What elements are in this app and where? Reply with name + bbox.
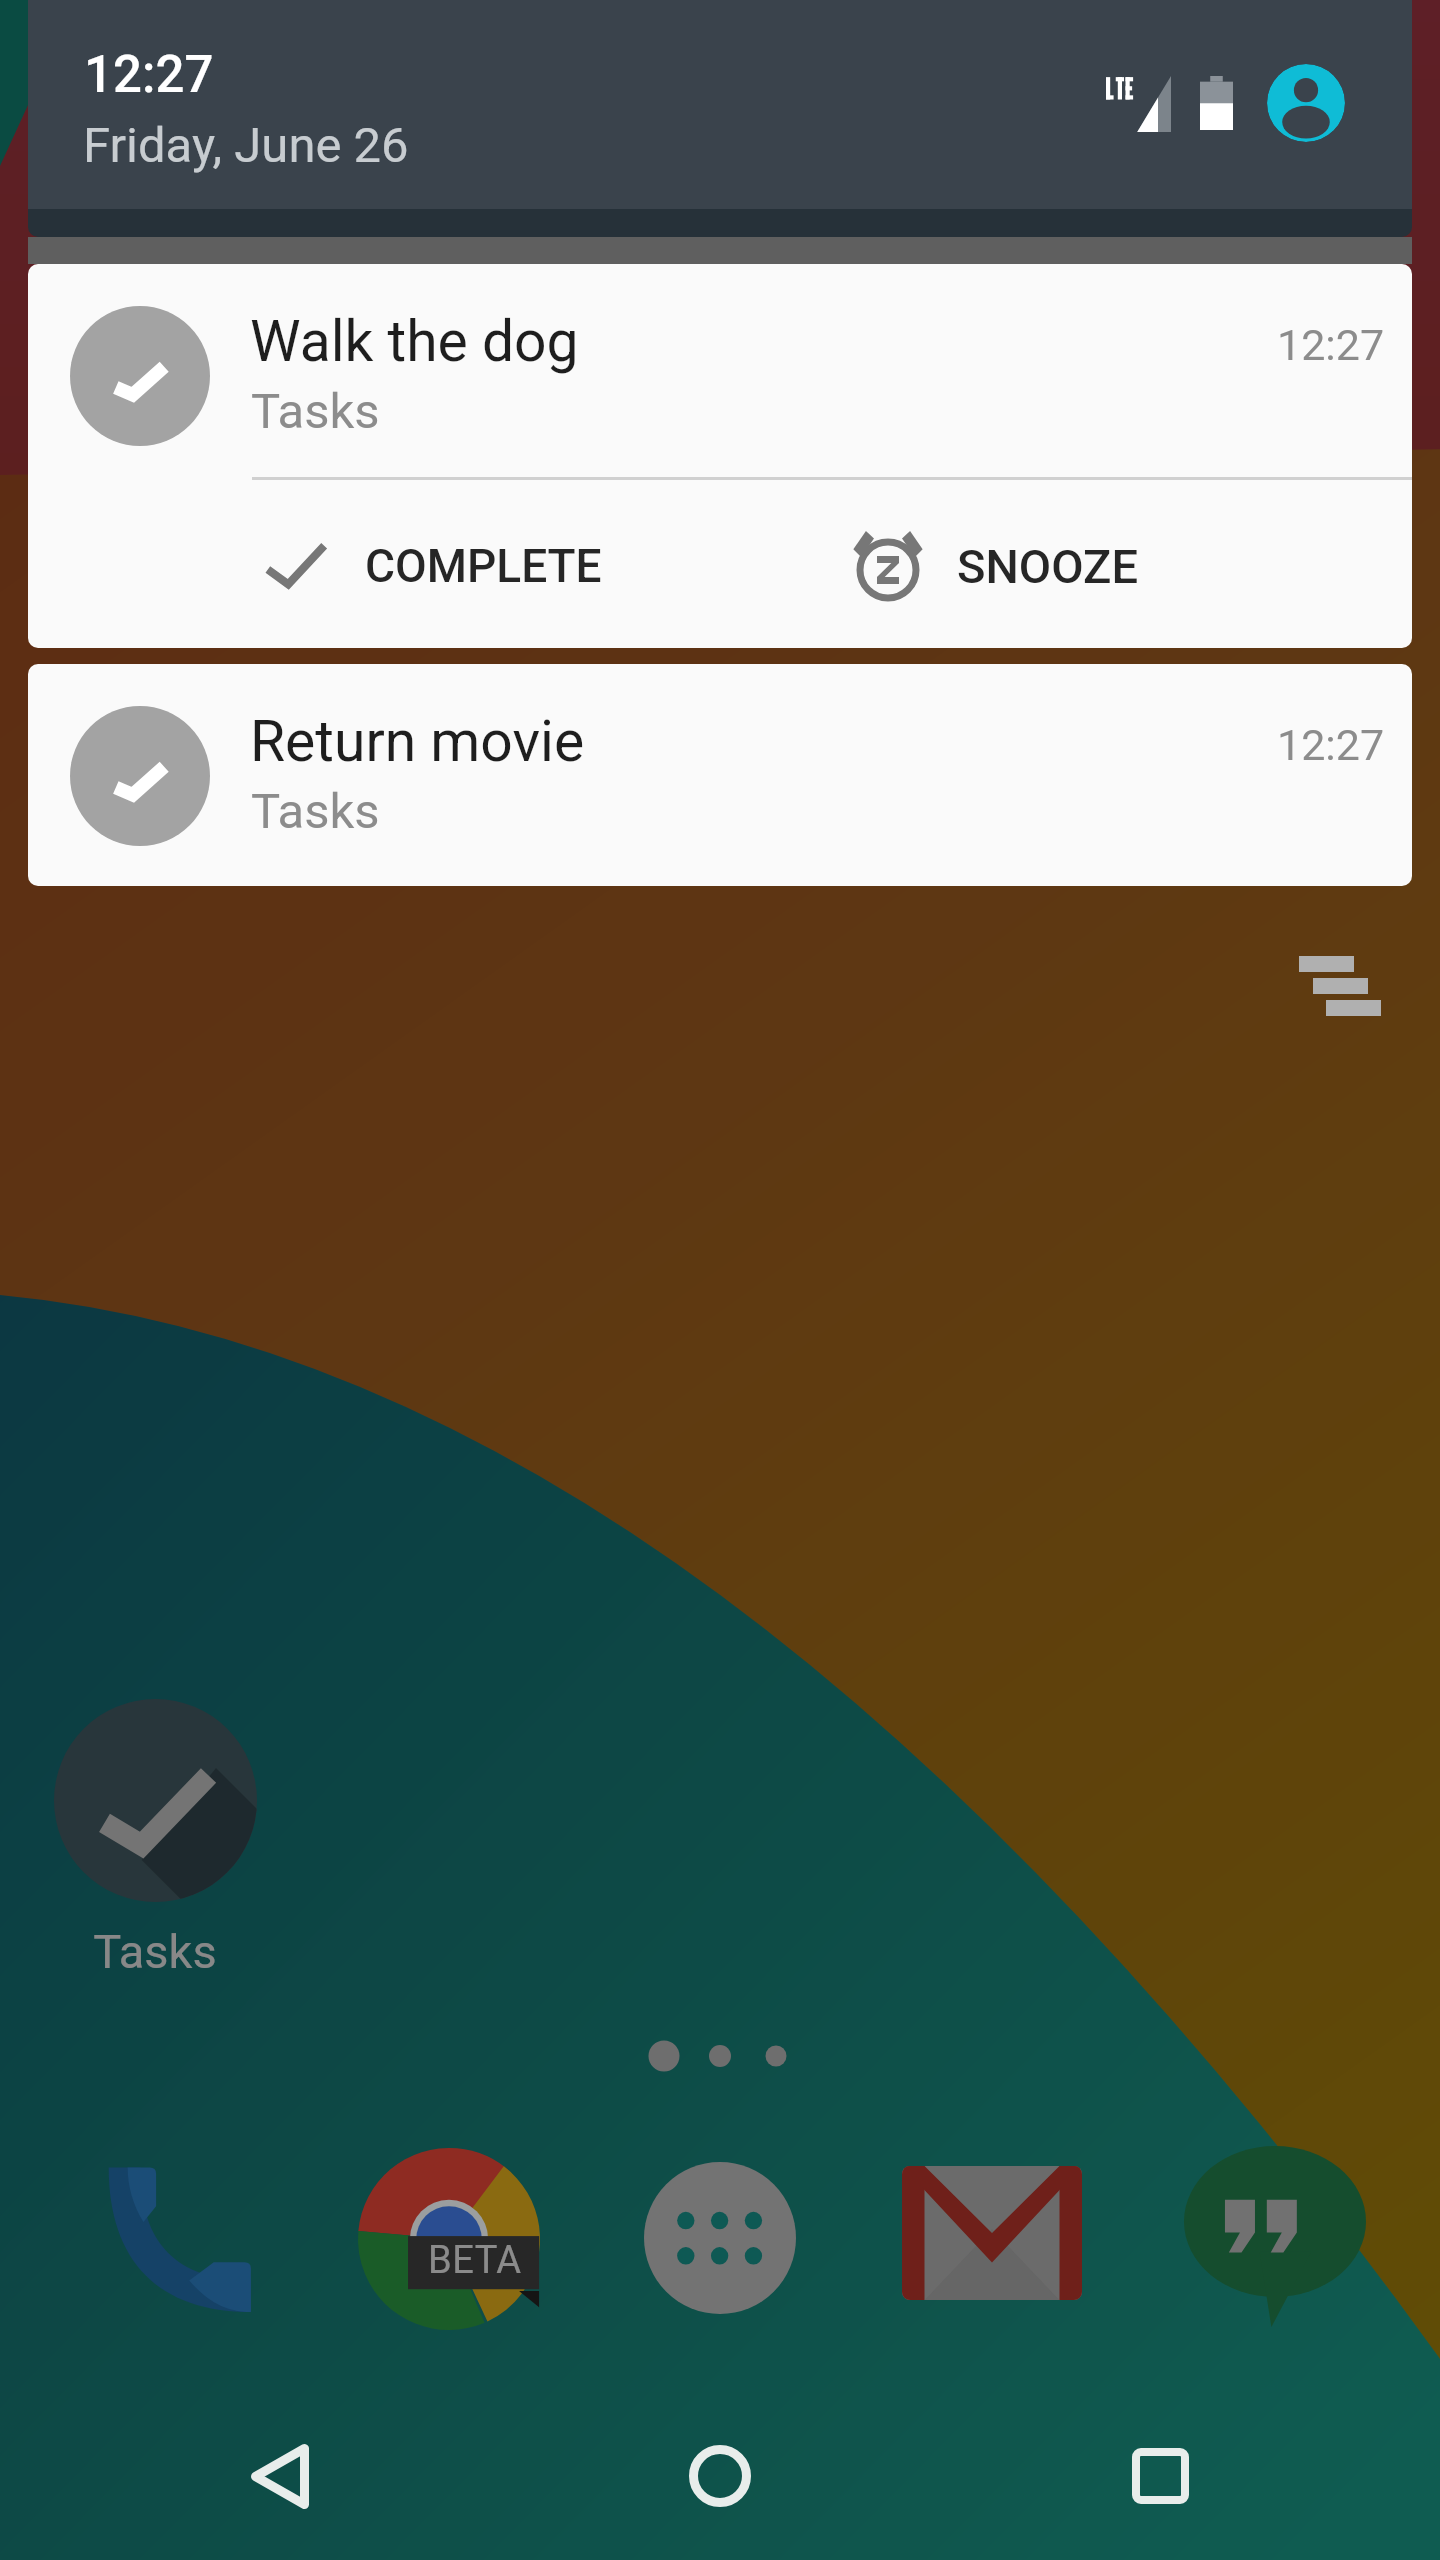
staticText: Walk the dog [250,308,579,375]
button[interactable]: Home [640,2396,800,2556]
button[interactable]: Tasks [44,1689,266,1969]
button[interactable]: User profile [1267,64,1345,142]
staticText: Friday, June 26 [83,117,409,174]
button[interactable]: Walk the dog [28,264,1412,648]
button[interactable]: Return movie [28,664,1412,886]
button[interactable]: Sort [1275,932,1405,1040]
staticText: Tasks [251,383,380,440]
staticText: 12:27 [84,45,214,105]
button[interactable]: Gmail [902,2166,1082,2346]
other: LTE signal [1106,76,1171,132]
staticText: BETA [428,2238,522,2283]
button[interactable]: COMPLETE [28,480,720,647]
button[interactable]: Hangouts [1184,2146,1366,2328]
staticText: COMPLETE [365,539,602,593]
staticText: Tasks [44,1924,266,1979]
staticText: 12:27 [1277,320,1385,370]
button[interactable]: Apps [644,2162,796,2314]
other: Battery [1200,76,1233,130]
staticText: Tasks [251,783,380,840]
staticText: Return movie [250,708,585,775]
staticText: 12:27 [1277,720,1385,770]
button[interactable]: Chrome [358,2148,540,2330]
button[interactable]: SNOOZE [720,480,1412,647]
button[interactable]: Back [200,2396,360,2556]
staticText: SNOOZE [957,539,1138,594]
button[interactable]: Phone [100,2158,258,2316]
button[interactable]: Recents [1080,2396,1240,2556]
